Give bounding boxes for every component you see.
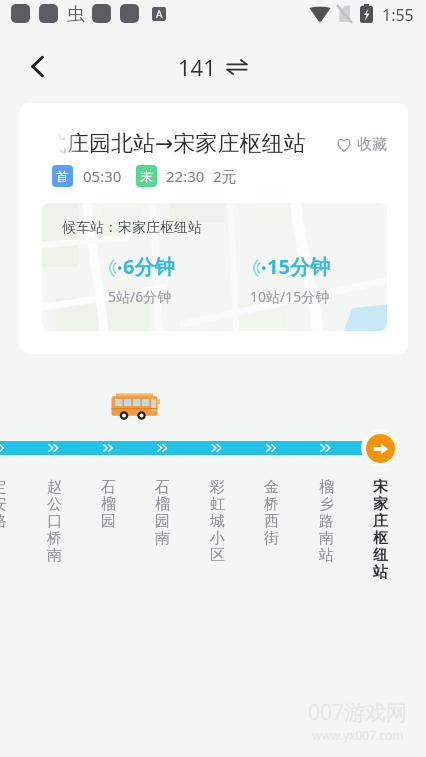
staticText: 1:55 xyxy=(382,4,414,26)
staticText: 彩 xyxy=(210,478,225,497)
staticText: 园 xyxy=(155,512,170,531)
staticText: 南 xyxy=(319,529,334,548)
button[interactable]: 宋 xyxy=(363,478,397,582)
staticText: 榴 xyxy=(101,495,116,514)
staticText: 口 xyxy=(47,512,62,531)
staticText: 桥 xyxy=(47,529,62,548)
button[interactable]: 收藏 xyxy=(336,135,387,154)
button[interactable]: 金 xyxy=(254,478,288,548)
staticText: 宋 xyxy=(373,478,388,497)
staticText: 石 xyxy=(101,478,116,497)
staticText: 弋庄园北站→宋家庄枢纽站 xyxy=(45,130,306,158)
staticText: 末 xyxy=(140,168,153,184)
staticText: 纽 xyxy=(373,546,388,565)
staticText: 石 xyxy=(155,478,170,497)
staticText: 路 xyxy=(319,512,334,531)
staticText: 6分钟 xyxy=(123,253,175,280)
staticText: 22:30 xyxy=(166,166,205,186)
staticText: 站 xyxy=(373,563,388,582)
staticText: 南 xyxy=(47,546,62,565)
staticText: 15分钟 xyxy=(267,253,330,280)
staticText: 141 xyxy=(178,52,216,82)
staticText: 城 xyxy=(210,512,225,531)
staticText: 庄 xyxy=(373,512,388,531)
button[interactable]: 弋庄园北站→宋家庄枢纽站 xyxy=(19,103,408,354)
staticText: 区 xyxy=(210,546,225,565)
staticText: 小 xyxy=(210,529,225,548)
staticText: A xyxy=(156,7,163,21)
staticText: 公 xyxy=(47,495,62,514)
button[interactable]: 榴 xyxy=(309,478,343,565)
button[interactable]: Next direction xyxy=(366,434,395,463)
staticText: 收藏 xyxy=(357,135,387,154)
staticText: 榴 xyxy=(319,478,334,497)
staticText: 候车站：宋家庄枢纽站 xyxy=(62,219,202,237)
button[interactable]: Swap direction xyxy=(226,56,248,78)
button[interactable]: 赵 xyxy=(37,478,71,565)
staticText: 首 xyxy=(56,168,69,184)
button[interactable]: 彩 xyxy=(200,478,234,565)
staticText: 2元 xyxy=(213,166,237,186)
button[interactable]: 石 xyxy=(145,478,179,548)
staticText: 5站/6分钟 xyxy=(108,287,172,306)
staticText: 定 xyxy=(0,478,7,497)
button[interactable]: 定 xyxy=(0,478,16,531)
staticText: 枢 xyxy=(373,529,388,548)
staticText: 南 xyxy=(155,529,170,548)
staticText: 007游戏网 xyxy=(308,698,408,727)
staticText: 乡 xyxy=(319,495,334,514)
staticText: 站 xyxy=(319,546,334,565)
staticText: 家 xyxy=(373,495,388,514)
staticText: 园 xyxy=(101,512,116,531)
staticText: 虫 xyxy=(67,3,85,24)
staticText: 路 xyxy=(0,512,7,531)
staticText: 榴 xyxy=(155,495,170,514)
staticText: 安 xyxy=(0,495,7,514)
staticText: 05:30 xyxy=(83,166,122,186)
button[interactable]: 石 xyxy=(91,478,125,531)
staticText: 金 xyxy=(264,478,279,497)
staticText: 赵 xyxy=(47,478,62,497)
staticText: 桥 xyxy=(264,495,279,514)
staticText: www.yx007.com xyxy=(312,727,404,743)
staticText: 10站/15分钟 xyxy=(250,287,330,306)
staticText: 西 xyxy=(264,512,279,531)
staticText: 虹 xyxy=(210,495,225,514)
button[interactable]: Back xyxy=(21,50,53,82)
staticText: 街 xyxy=(264,529,279,548)
